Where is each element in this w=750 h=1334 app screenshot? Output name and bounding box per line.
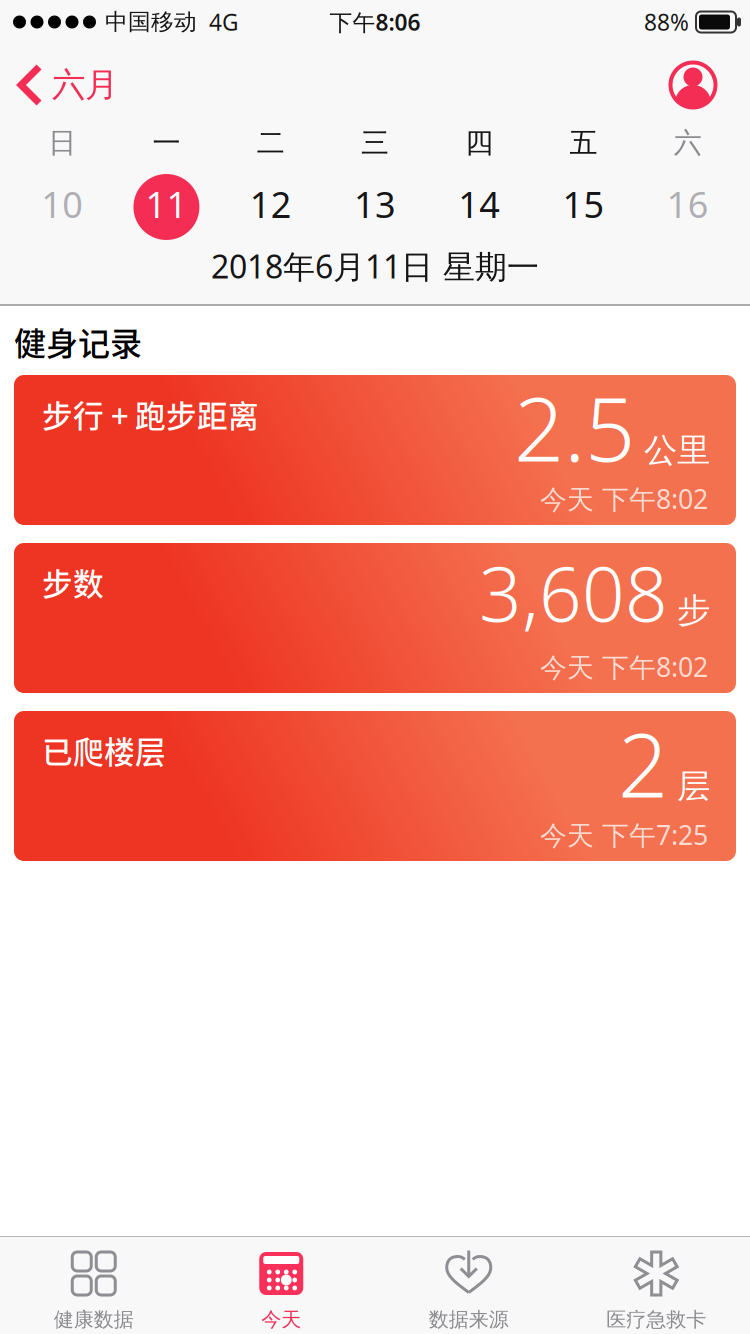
staticText: 2 — [618, 705, 668, 822]
staticText: 15 — [563, 180, 605, 228]
staticText: 今天 下午8:02 — [540, 649, 708, 684]
button[interactable]: 步行 + 跑步距离 — [0, 375, 750, 525]
button[interactable]: 个人资料 — [669, 61, 750, 109]
staticText: 六月 — [52, 64, 118, 105]
staticText: 公里 — [644, 430, 710, 471]
staticText: 中国移动 — [105, 8, 197, 36]
button[interactable]: 已爬楼层 — [0, 711, 750, 861]
staticText: 3,608 — [479, 543, 668, 642]
button[interactable]: 数据来源 — [375, 1246, 562, 1332]
staticText: 已爬楼层 — [42, 728, 166, 772]
staticText: 2018年6月11日 星期一 — [211, 245, 539, 287]
staticText: 四 — [465, 126, 493, 160]
staticText: 88% — [644, 7, 689, 37]
staticText: 10 — [41, 180, 83, 228]
staticText: 五 — [570, 126, 598, 160]
staticText: 今天 下午7:25 — [540, 817, 708, 852]
button[interactable]: 15 — [531, 161, 636, 247]
staticText: 4G — [209, 7, 239, 37]
button[interactable]: 步数 — [0, 543, 750, 693]
button[interactable]: 六月 — [0, 62, 118, 108]
staticText: 步数 — [42, 560, 104, 604]
staticText: 日 — [48, 126, 76, 160]
staticText: 一 — [152, 126, 180, 160]
staticText: 层 — [677, 766, 710, 807]
staticText: 13 — [354, 180, 396, 228]
staticText: 步行 + 跑步距离 — [42, 392, 259, 436]
button[interactable]: 今天 — [187, 1246, 375, 1332]
staticText: 2.5 — [514, 369, 635, 486]
staticText: 数据来源 — [429, 1307, 509, 1332]
button[interactable]: 12 — [219, 161, 323, 247]
staticText: 健身记录 — [14, 318, 142, 365]
button[interactable]: 医疗急救卡 — [562, 1246, 750, 1332]
staticText: 三 — [361, 126, 389, 160]
staticText: 今天 下午8:02 — [540, 481, 708, 516]
staticText: 医疗急救卡 — [606, 1307, 706, 1332]
staticText: 步 — [677, 590, 710, 631]
staticText: 16 — [667, 180, 709, 228]
staticText: 11 — [145, 180, 187, 228]
button[interactable]: 13 — [323, 161, 427, 247]
button[interactable]: 14 — [427, 161, 531, 247]
button[interactable]: 16 — [636, 161, 740, 247]
staticText: 六 — [674, 126, 702, 160]
staticText: 下午8:06 — [329, 7, 420, 37]
staticText: 今天 — [261, 1307, 301, 1332]
staticText: 14 — [458, 180, 500, 228]
staticText: 健康数据 — [54, 1307, 134, 1332]
button[interactable]: 健康数据 — [0, 1246, 187, 1332]
staticText: 12 — [250, 180, 292, 228]
staticText: 二 — [257, 126, 285, 160]
button[interactable]: 11 — [114, 161, 219, 247]
button[interactable]: 10 — [10, 161, 114, 247]
